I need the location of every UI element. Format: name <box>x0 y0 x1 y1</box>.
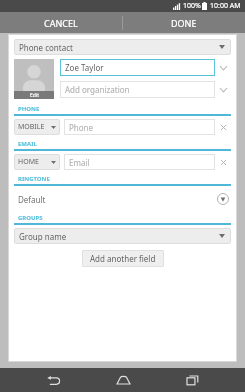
staticText: PHONE <box>18 105 40 113</box>
button[interactable]: Recent apps <box>175 368 209 392</box>
staticText: Zoe Taylor <box>65 62 104 73</box>
staticText: Email <box>69 157 90 168</box>
staticText: EMAIL <box>18 140 37 148</box>
button[interactable]: Edit photo <box>14 59 54 99</box>
button[interactable]: DONE <box>123 12 245 33</box>
button[interactable]: Add organization <box>60 81 215 98</box>
button[interactable]: MOBILE <box>14 119 60 135</box>
button[interactable]: Phone contact <box>14 39 231 55</box>
button[interactable]: Default <box>14 188 231 210</box>
button[interactable]: Group name <box>14 228 231 244</box>
button[interactable]: Add another field <box>82 250 164 267</box>
staticText: Add organization <box>65 84 130 95</box>
staticText: 100% <box>183 1 201 11</box>
other: Choose ringtone <box>217 192 229 206</box>
staticText: Group name <box>19 231 67 242</box>
staticText: Edit <box>30 92 39 99</box>
button[interactable]: CANCEL <box>0 12 122 33</box>
button[interactable]: Email <box>64 154 215 170</box>
button[interactable]: Remove MOBILE <box>215 119 231 135</box>
button[interactable]: Home <box>106 368 140 392</box>
staticText: Default <box>18 194 217 205</box>
staticText: Add another field <box>90 253 156 264</box>
button[interactable]: Remove HOME <box>215 154 231 170</box>
staticText: 10:00 AM <box>210 1 241 11</box>
staticText: Phone <box>69 122 94 133</box>
button[interactable]: Phone <box>64 119 215 135</box>
staticText: RINGTONE <box>18 175 50 183</box>
staticText: CANCEL <box>44 17 78 29</box>
button[interactable]: HOME <box>14 154 60 170</box>
staticText: HOME <box>18 157 39 167</box>
staticText: Phone contact <box>19 42 73 53</box>
button[interactable]: Back <box>36 368 70 392</box>
staticText: DONE <box>171 17 197 29</box>
button[interactable]: Zoe Taylor <box>60 59 215 76</box>
button[interactable]: Expand name <box>215 60 231 76</box>
button[interactable]: Expand organization <box>215 82 231 98</box>
staticText: MOBILE <box>18 122 45 132</box>
staticText: GROUPS <box>18 214 43 222</box>
